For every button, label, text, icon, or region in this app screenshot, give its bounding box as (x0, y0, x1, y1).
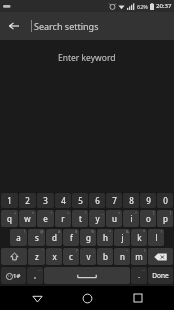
staticText: j (121, 232, 124, 243)
button[interactable]: t (72, 210, 88, 227)
button[interactable]: x (46, 248, 62, 265)
button[interactable]: 5 (72, 193, 88, 208)
staticText: l (155, 232, 158, 243)
staticText: ; (93, 248, 95, 253)
button[interactable]: r (55, 210, 71, 227)
button[interactable]: v (80, 248, 96, 265)
staticText: > (135, 210, 138, 215)
staticText: 8 (129, 195, 134, 206)
button[interactable]: j (114, 229, 130, 246)
staticText: ] (170, 210, 172, 215)
button[interactable]: 0 (157, 193, 173, 208)
staticText: ... (38, 267, 42, 272)
staticText: a (16, 232, 21, 243)
button[interactable]: m (131, 248, 147, 265)
button[interactable]: z (28, 248, 45, 265)
staticText: r (61, 213, 65, 224)
button[interactable]: , (27, 267, 43, 284)
button[interactable]: Backspace (148, 248, 173, 265)
staticText: 1 (7, 195, 12, 206)
button[interactable]: s (28, 229, 45, 246)
staticText: p (163, 213, 168, 224)
staticText: Done (152, 271, 169, 280)
staticText: 5 (78, 195, 83, 206)
button[interactable]: h (97, 229, 113, 246)
staticText: + (14, 210, 17, 215)
staticText: & (126, 229, 129, 234)
button[interactable]: n (114, 248, 130, 265)
staticText: 2 (25, 195, 30, 206)
button[interactable]: Done (148, 267, 173, 284)
staticText: = (67, 210, 70, 215)
staticText: 6 (95, 195, 100, 206)
button[interactable]: Home (73, 286, 101, 310)
staticText: Search settings (34, 20, 99, 32)
staticText: t (79, 213, 82, 224)
staticText: 7 (112, 195, 117, 206)
button[interactable]: d (46, 229, 62, 246)
staticText: . (138, 271, 140, 280)
staticText: d (52, 232, 57, 243)
staticText: h (103, 232, 108, 243)
staticText: - (110, 248, 112, 253)
button[interactable]: 3 (37, 193, 54, 208)
button[interactable]: b (97, 248, 113, 265)
button[interactable]: . (131, 267, 147, 284)
button[interactable]: o (140, 210, 156, 227)
staticText: 0 (163, 195, 168, 206)
staticText: , (34, 271, 36, 280)
staticText: i (130, 213, 133, 224)
staticText: c (69, 251, 73, 262)
button[interactable]: g (80, 229, 96, 246)
staticText: @ (40, 229, 44, 234)
button[interactable]: l (148, 229, 164, 246)
button[interactable]: y (89, 210, 105, 227)
button[interactable]: Space (44, 267, 130, 284)
button[interactable]: p (157, 210, 173, 227)
button[interactable]: u (106, 210, 122, 227)
staticText: 1# (13, 272, 21, 280)
staticText: ? (76, 248, 78, 253)
button[interactable]: a (10, 229, 27, 246)
button[interactable]: e (37, 210, 54, 227)
button[interactable]: 1 (1, 193, 18, 208)
staticText: v (86, 251, 91, 262)
staticText: ( (161, 229, 163, 234)
button[interactable]: f (63, 229, 79, 246)
button[interactable]: Shift (1, 248, 27, 265)
staticText: $ (75, 229, 78, 234)
button[interactable]: 2 (19, 193, 36, 208)
button[interactable]: 7 (106, 193, 122, 208)
button[interactable]: q (1, 210, 18, 227)
staticText: _ (102, 210, 104, 215)
button[interactable]: 6 (89, 193, 105, 208)
staticText: y (95, 213, 100, 224)
button[interactable]: k (131, 229, 147, 246)
staticText: 4 (61, 195, 66, 206)
staticText: < (118, 210, 121, 215)
button[interactable]: 8 (123, 193, 139, 208)
button[interactable]: 4 (55, 193, 71, 208)
staticText: 20:37 (156, 2, 172, 10)
button[interactable]: Back (0, 12, 28, 40)
button[interactable]: c (63, 248, 79, 265)
button[interactable]: Recent apps (124, 286, 152, 310)
button[interactable]: w (19, 210, 36, 227)
staticText: f (70, 232, 73, 243)
staticText: # (58, 229, 61, 234)
staticText: b (103, 251, 108, 262)
staticText: ! (24, 229, 26, 234)
staticText: q (7, 213, 12, 224)
staticText: 3 (43, 195, 48, 206)
button[interactable]: 1# (1, 267, 26, 284)
button[interactable]: Back (23, 286, 51, 310)
staticText: [ (153, 210, 155, 215)
staticText: 62% (137, 3, 148, 10)
staticText: * (143, 229, 146, 234)
button[interactable]: Search settings (34, 12, 174, 40)
staticText: s (35, 232, 39, 243)
staticText: ... (142, 267, 146, 272)
staticText: / (85, 210, 87, 215)
button[interactable]: i (123, 210, 139, 227)
button[interactable]: 9 (140, 193, 156, 208)
